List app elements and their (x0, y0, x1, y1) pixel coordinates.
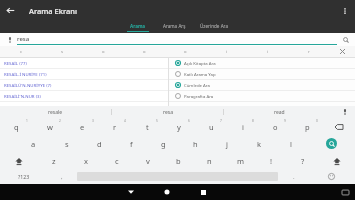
button[interactable]: 2 (33, 118, 66, 135)
button[interactable]: Back (113, 184, 149, 200)
button[interactable]: Shift (0, 152, 38, 169)
staticText: r (113, 122, 117, 132)
button[interactable]: 0 (291, 118, 323, 135)
button[interactable]: s (42, 46, 83, 57)
button[interactable]: Keyboard (335, 184, 355, 200)
staticText: j (226, 139, 228, 149)
button[interactable]: o (165, 46, 206, 57)
button[interactable]: Arama (125, 23, 151, 32)
button[interactable]: 7 (195, 118, 227, 135)
button[interactable]: RESAİL-İ NURİYE (71) (0, 69, 168, 79)
button[interactable]: Açık Kitapta Ara (169, 58, 355, 68)
staticText: v (146, 156, 150, 166)
button[interactable]: Arama Arş (161, 23, 188, 32)
staticText: z (52, 156, 56, 166)
button[interactable]: x (70, 152, 101, 169)
button[interactable]: 5 (131, 118, 163, 135)
staticText: resa (17, 35, 30, 43)
staticText: ! (270, 156, 273, 166)
staticText: k (257, 139, 262, 149)
staticText: Arama Ekranı (29, 6, 77, 16)
button[interactable]: Home (149, 184, 185, 200)
button[interactable]: d (83, 135, 115, 152)
staticText: Katlı Arama Yap (184, 71, 216, 77)
button[interactable]: Voice search (5, 35, 14, 44)
staticText: y (177, 122, 181, 132)
staticText: s (65, 139, 69, 149)
button[interactable]: Voice input (335, 106, 355, 118)
button[interactable]: ! (256, 152, 287, 169)
button[interactable]: m (225, 152, 256, 169)
button[interactable]: More options (334, 0, 355, 21)
button[interactable]: resa (112, 106, 223, 118)
button[interactable]: Clear (329, 46, 355, 57)
button[interactable]: Comma (48, 169, 75, 184)
staticText: o (184, 49, 187, 55)
staticText: 2 (59, 119, 61, 123)
button[interactable]: a (17, 135, 50, 152)
staticText: m (237, 156, 245, 166)
staticText: h (193, 139, 198, 149)
button[interactable]: Paragrafta Ara (169, 91, 355, 101)
button[interactable]: RESAİLİ'N-NUR (3) (0, 91, 168, 101)
button[interactable]: f (115, 135, 147, 152)
button[interactable]: Shift (318, 152, 355, 169)
staticText: n (207, 156, 212, 166)
button[interactable]: v (132, 152, 163, 169)
staticText: b (176, 156, 181, 166)
button[interactable]: RESAİLÜ'N-NURİYYE (7) (0, 80, 168, 90)
button[interactable]: o (83, 46, 124, 57)
staticText: 9 (284, 119, 286, 123)
button[interactable]: Katlı Arama Yap (169, 69, 355, 79)
staticText: 5 (156, 119, 158, 123)
staticText: g (161, 139, 166, 149)
staticText: Paragrafta Ara (184, 93, 214, 99)
button[interactable]: c (0, 46, 42, 57)
button[interactable]: 9 (259, 118, 291, 135)
button[interactable]: Backspace (323, 118, 355, 135)
button[interactable]: 1 (0, 118, 33, 135)
staticText: i (226, 49, 228, 55)
staticText: 7 (220, 119, 222, 123)
button[interactable]: c (101, 152, 132, 169)
button[interactable]: j (211, 135, 243, 152)
button[interactable]: Back (0, 0, 21, 21)
staticText: Arama Arş (163, 23, 186, 29)
button[interactable]: resale (0, 106, 111, 118)
button[interactable]: b (163, 152, 194, 169)
button[interactable]: Search (307, 135, 355, 152)
staticText: c (20, 49, 23, 55)
button[interactable]: z (38, 152, 70, 169)
button[interactable]: l (275, 135, 307, 152)
button[interactable]: Üzerinde Ara (198, 23, 230, 32)
button[interactable]: n (194, 152, 225, 169)
staticText: 1 (26, 119, 28, 123)
button[interactable]: Recent apps (185, 184, 221, 200)
button[interactable]: Emoji (307, 169, 355, 184)
button[interactable]: 8 (227, 118, 259, 135)
button[interactable]: h (179, 135, 211, 152)
button[interactable]: Cümlede Ara (169, 80, 355, 90)
button[interactable]: 6 (163, 118, 195, 135)
button[interactable]: g (147, 135, 179, 152)
button[interactable]: ?123 (0, 169, 48, 184)
button[interactable]: k (243, 135, 275, 152)
staticText: 0 (316, 119, 318, 123)
button[interactable]: Search (341, 35, 350, 44)
button[interactable]: ? (287, 152, 318, 169)
button[interactable]: s (50, 135, 83, 152)
button[interactable]: read (224, 106, 335, 118)
staticText: , (61, 173, 63, 181)
button[interactable]: RESAİL (77) (0, 58, 168, 68)
staticText: d (97, 139, 102, 149)
button[interactable]: 3 (66, 118, 99, 135)
staticText: . (293, 173, 295, 181)
staticText: 3 (92, 119, 94, 123)
button[interactable]: o (124, 46, 165, 57)
button[interactable]: 4 (99, 118, 131, 135)
button[interactable]: r (288, 46, 329, 57)
